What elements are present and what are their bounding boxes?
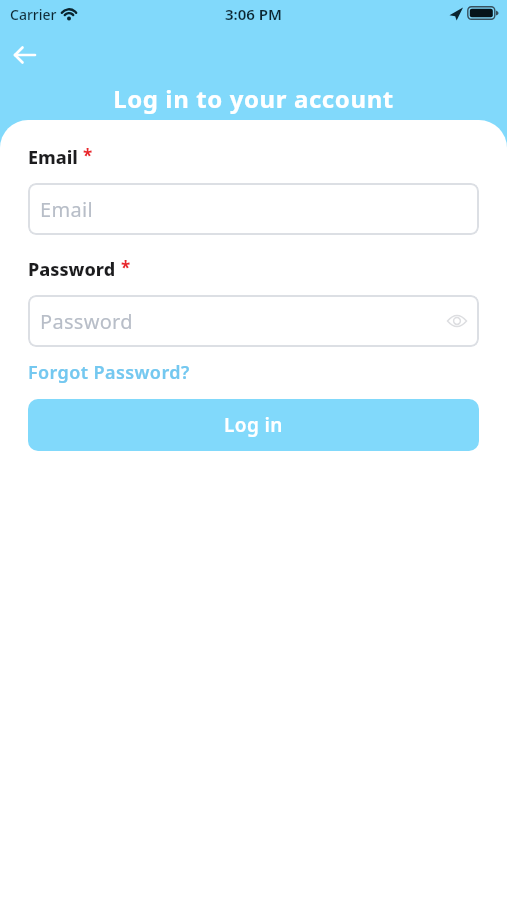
- staticText: Password: [40, 308, 133, 335]
- staticText: Forgot Password?: [28, 360, 190, 385]
- staticText: 3:06 PM: [0, 4, 507, 24]
- button[interactable]: [12, 42, 38, 68]
- button[interactable]: Forgot Password?: [28, 360, 190, 385]
- button[interactable]: Password: [28, 295, 479, 347]
- staticText: Email: [28, 145, 78, 170]
- staticText: Password: [28, 257, 116, 282]
- staticText: Carrier: [10, 5, 57, 24]
- staticText: Email: [40, 196, 93, 223]
- staticText: *: [121, 256, 131, 279]
- staticText: Log in: [224, 412, 283, 438]
- button[interactable]: Log in: [28, 399, 479, 451]
- button[interactable]: Email: [28, 183, 479, 235]
- staticText: *: [83, 144, 93, 167]
- staticText: Log in to your account: [0, 82, 507, 115]
